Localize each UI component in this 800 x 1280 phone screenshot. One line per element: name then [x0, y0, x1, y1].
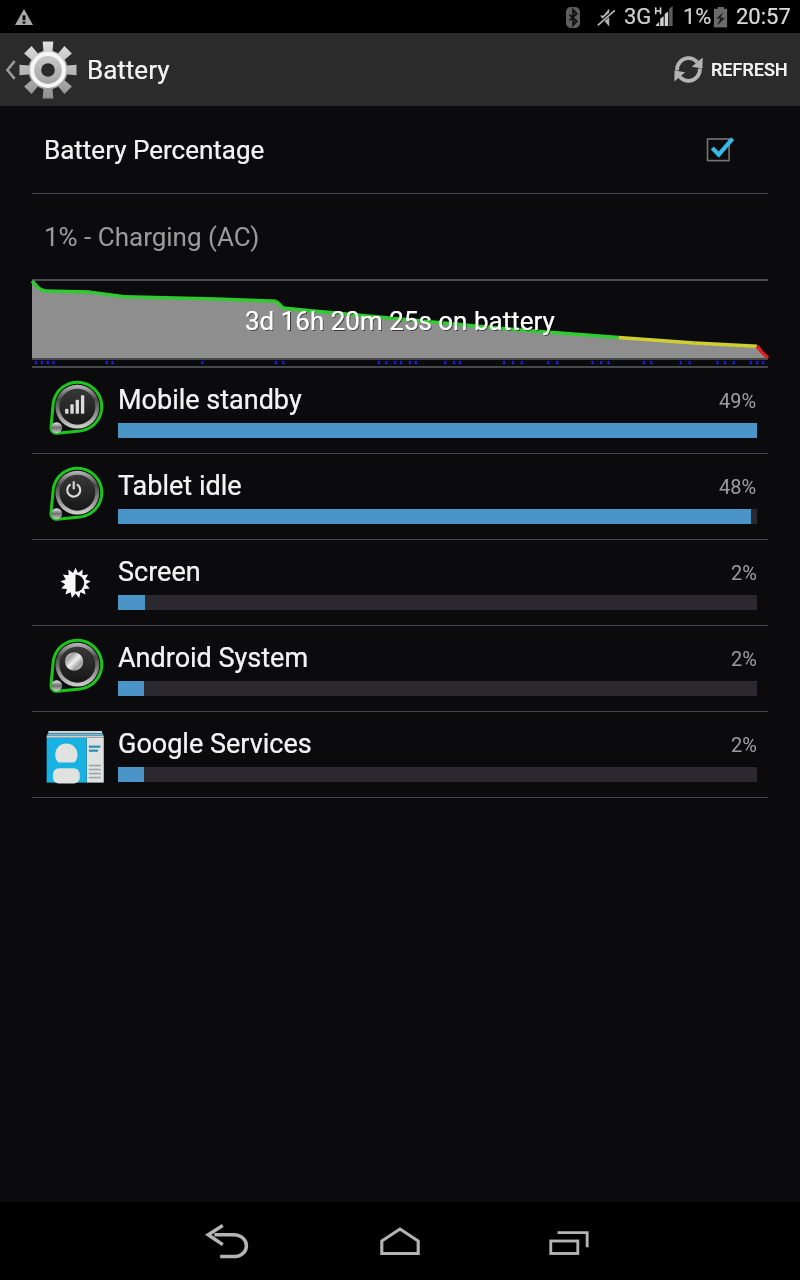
staticText: Tablet idle: [118, 470, 242, 502]
button[interactable]: Tablet idle: [0, 454, 800, 539]
staticText: Mobile standby: [118, 384, 302, 416]
staticText: 49%: [719, 389, 757, 412]
staticText: REFRESH: [711, 59, 788, 80]
button[interactable]: Battery Percentage: [0, 106, 800, 193]
staticText: Google Services: [118, 728, 312, 760]
staticText: Battery: [87, 55, 170, 85]
staticText: 2%: [731, 561, 757, 584]
button[interactable]: Home: [350, 1202, 450, 1280]
staticText: 1% - Charging (AC): [44, 222, 260, 252]
button[interactable]: Google Services: [0, 712, 800, 797]
button[interactable]: Recents: [520, 1202, 620, 1280]
staticText: 48%: [719, 475, 757, 498]
button[interactable]: Mobile standby: [0, 368, 800, 453]
button[interactable]: Battery: [0, 33, 180, 106]
staticText: 3d 16h 20m 25s on battery: [246, 307, 556, 337]
button[interactable]: Screen: [0, 540, 800, 625]
staticText: Battery Percentage: [44, 135, 265, 165]
staticText: 3d 16h 20m 25s on battery: [245, 306, 555, 336]
staticText: 20:57: [736, 4, 791, 30]
staticText: 2%: [731, 733, 757, 756]
button[interactable]: Android System: [0, 626, 800, 711]
staticText: 3G: [624, 4, 652, 30]
button[interactable]: REFRESH: [652, 33, 800, 106]
button[interactable]: Back: [179, 1202, 279, 1280]
staticText: Screen: [118, 556, 201, 588]
staticText: Android System: [118, 642, 309, 674]
staticText: 1%: [683, 4, 712, 30]
staticText: 2%: [731, 647, 757, 670]
